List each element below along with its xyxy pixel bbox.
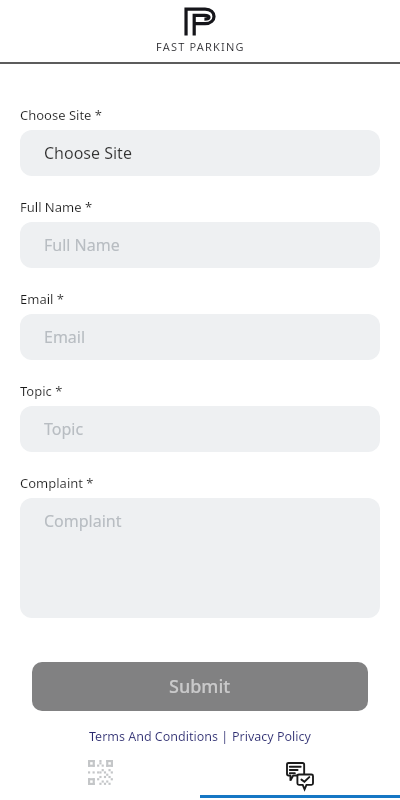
staticText: Topic xyxy=(44,418,84,440)
staticText: Complaint * xyxy=(20,474,94,492)
staticText: | xyxy=(218,728,232,745)
button[interactable]: Submit xyxy=(32,662,368,711)
staticText: FAST PARKING xyxy=(156,39,245,54)
button[interactable]: Full Name xyxy=(20,222,380,268)
button[interactable]: Complaints xyxy=(200,746,400,798)
staticText: Full Name * xyxy=(20,198,93,216)
staticText: Full Name xyxy=(44,234,120,256)
staticText: Complaint xyxy=(44,510,122,532)
staticText: Choose Site * xyxy=(20,106,102,124)
button[interactable]: Topic xyxy=(20,406,380,452)
staticText: Terms And Conditions xyxy=(89,728,218,745)
button[interactable]: Privacy Policy xyxy=(232,728,311,745)
button[interactable]: Scan QR code xyxy=(0,746,200,798)
staticText: Choose Site xyxy=(44,142,132,164)
staticText: Privacy Policy xyxy=(232,728,311,745)
button[interactable]: Complaint xyxy=(20,498,380,618)
staticText: Email xyxy=(44,326,86,348)
staticText: Email * xyxy=(20,290,64,308)
button[interactable]: Terms And Conditions xyxy=(89,728,218,745)
staticText: Submit xyxy=(169,674,231,699)
button[interactable]: Email xyxy=(20,314,380,360)
staticText: Topic * xyxy=(20,382,63,400)
button[interactable]: Choose Site xyxy=(20,130,380,176)
